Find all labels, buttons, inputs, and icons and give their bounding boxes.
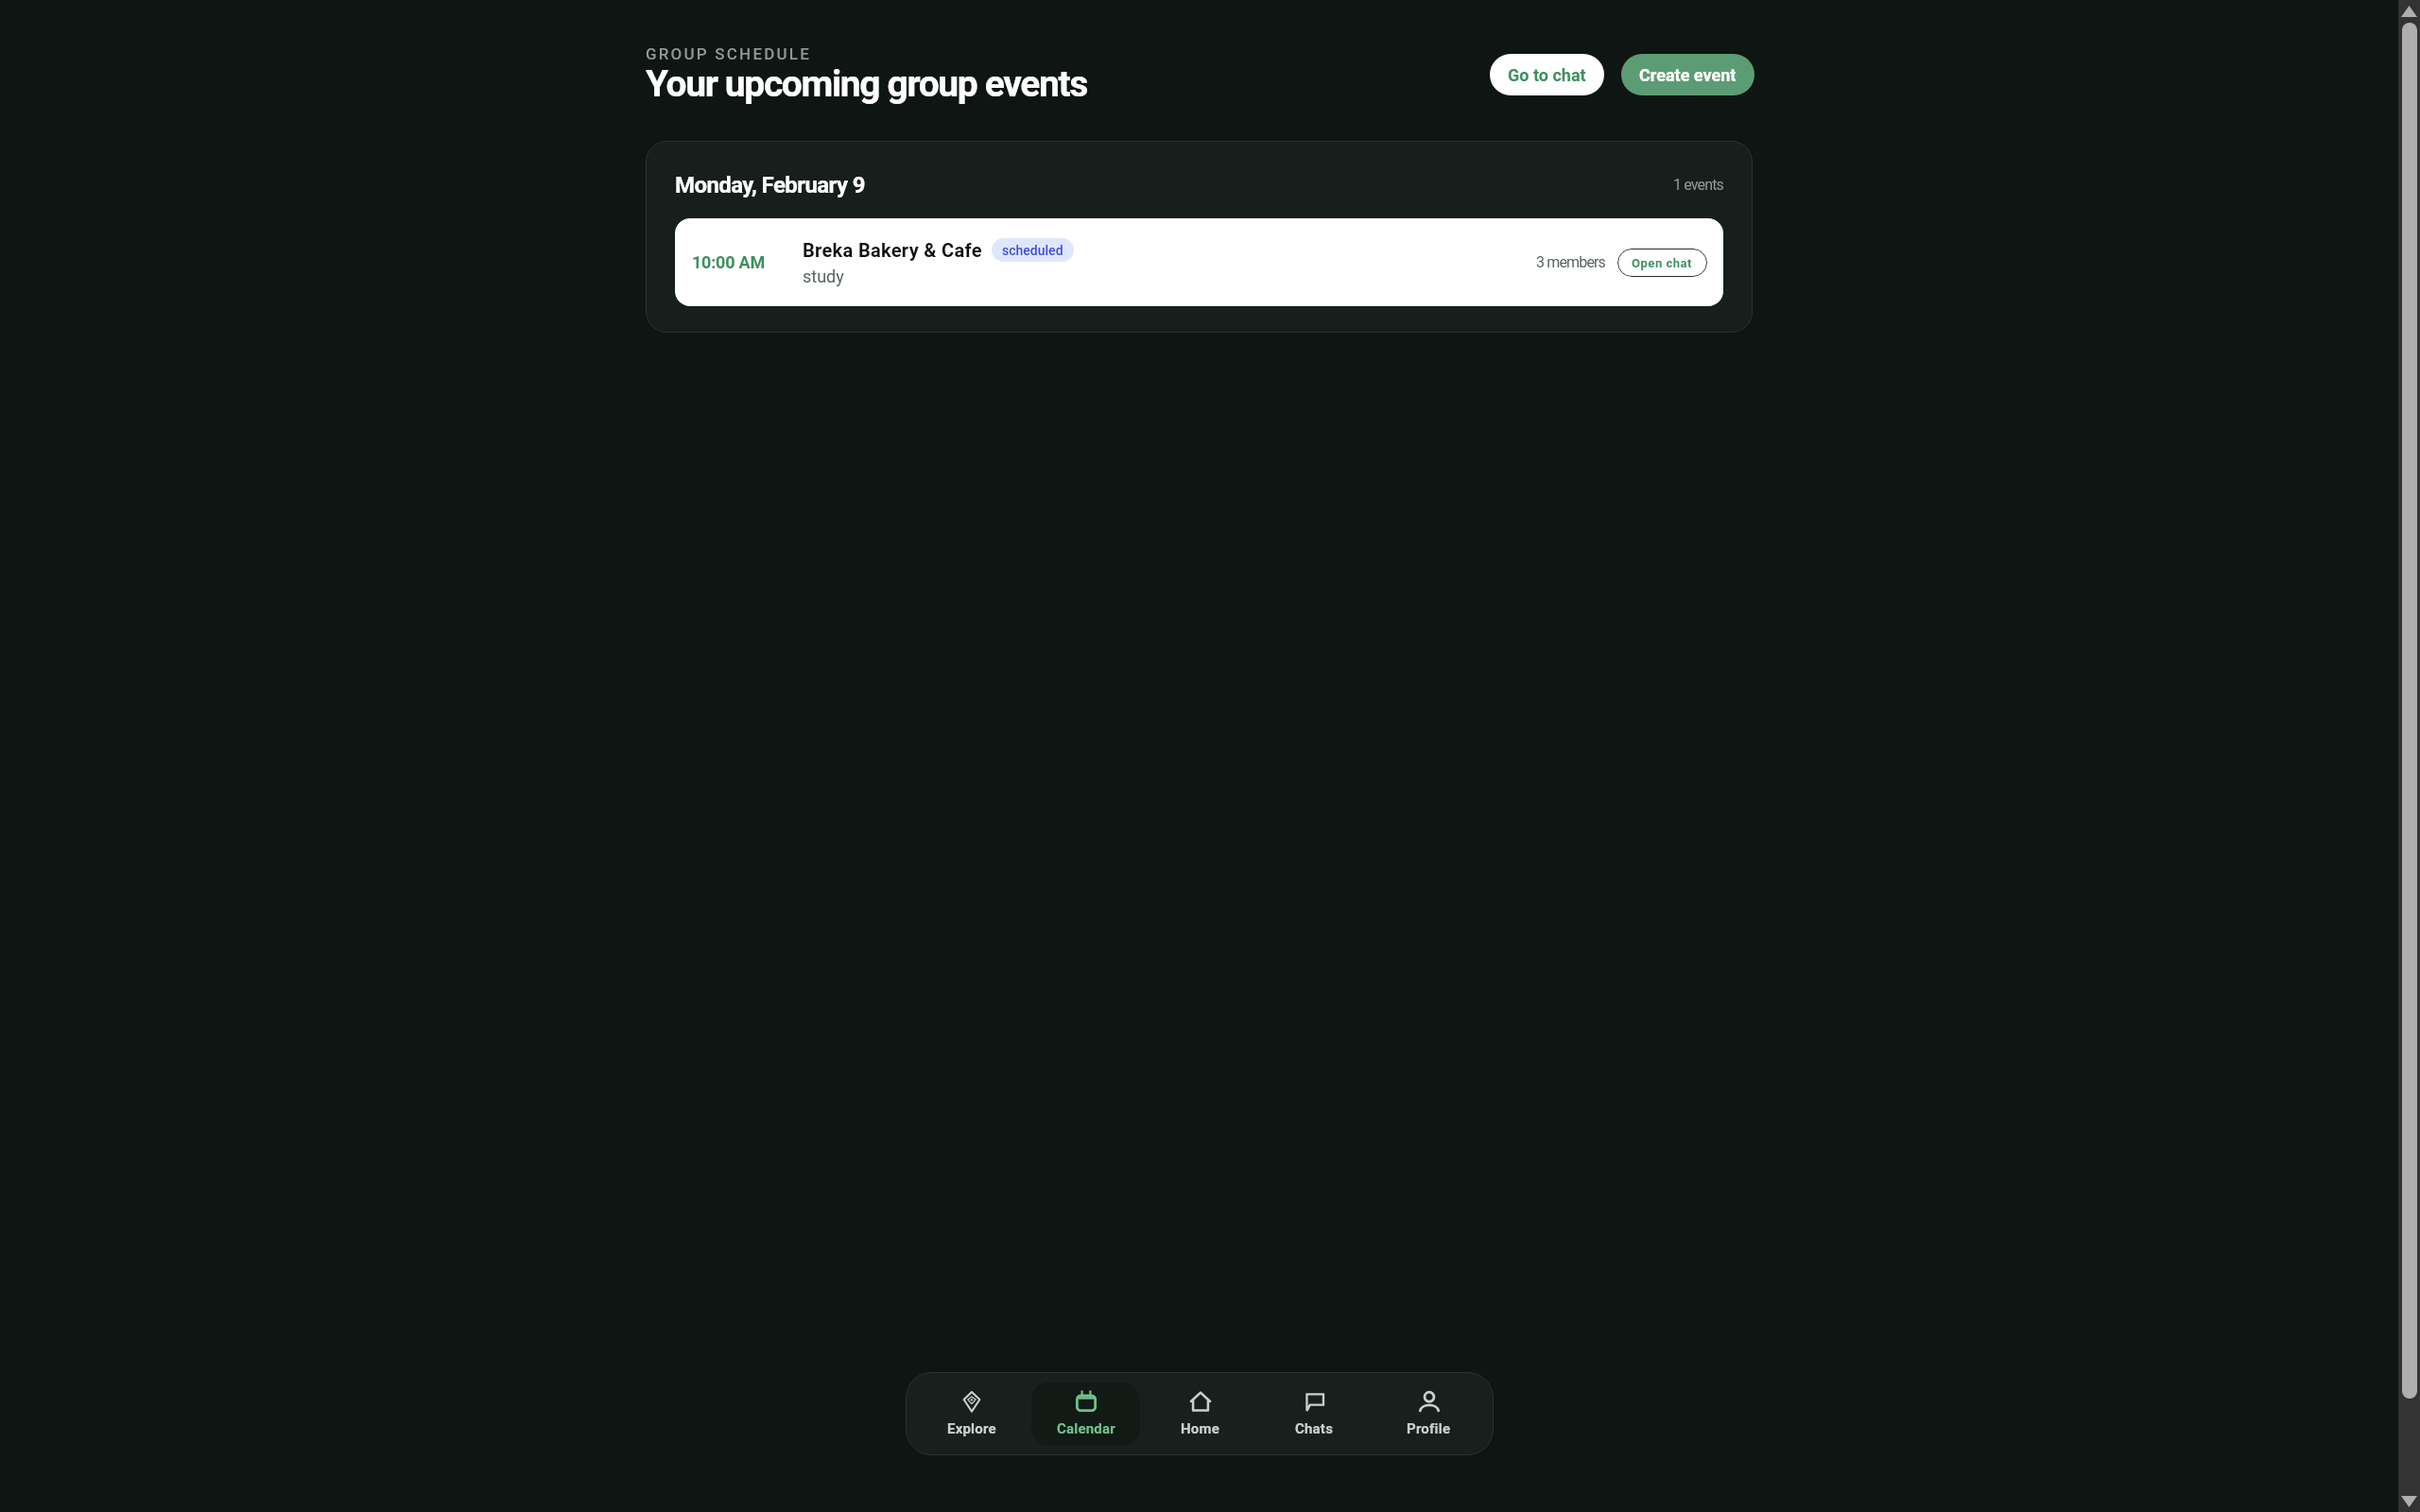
staticText: Breka Bakery & Cafe (803, 239, 982, 261)
button[interactable]: Profile (1374, 1383, 1483, 1446)
staticText: Your upcoming group events (646, 62, 1087, 106)
staticText: Go to chat (1508, 65, 1586, 85)
button[interactable]: Scroll up (2398, 0, 2420, 22)
button[interactable]: Home (1146, 1383, 1254, 1446)
button[interactable]: Open chat (1617, 249, 1707, 277)
staticText: 3 members (1536, 253, 1606, 271)
staticText: scheduled (1002, 243, 1063, 258)
button[interactable]: Explore (917, 1383, 1026, 1446)
staticText: Home (1181, 1420, 1219, 1437)
staticText: GROUP SCHEDULE (646, 44, 812, 63)
staticText: Monday, February 9 (675, 172, 866, 198)
staticText: Explore (947, 1420, 996, 1437)
button[interactable]: Calendar (1031, 1383, 1140, 1446)
staticText: 10:00 AM (692, 252, 765, 272)
button[interactable]: Create event (1621, 54, 1754, 95)
button[interactable]: 10:00 AM (675, 218, 1723, 306)
staticText: Calendar (1057, 1420, 1115, 1437)
button[interactable]: Go to chat (1490, 54, 1604, 95)
staticText: Chats (1295, 1420, 1334, 1437)
staticText: Profile (1407, 1420, 1451, 1437)
staticText: 1 events (1673, 176, 1724, 194)
button[interactable]: Chats (1260, 1383, 1369, 1446)
button[interactable]: Scroll down (2398, 1490, 2420, 1512)
staticText: Create event (1639, 65, 1737, 85)
staticText: Open chat (1632, 256, 1693, 270)
staticText: study (803, 266, 844, 286)
